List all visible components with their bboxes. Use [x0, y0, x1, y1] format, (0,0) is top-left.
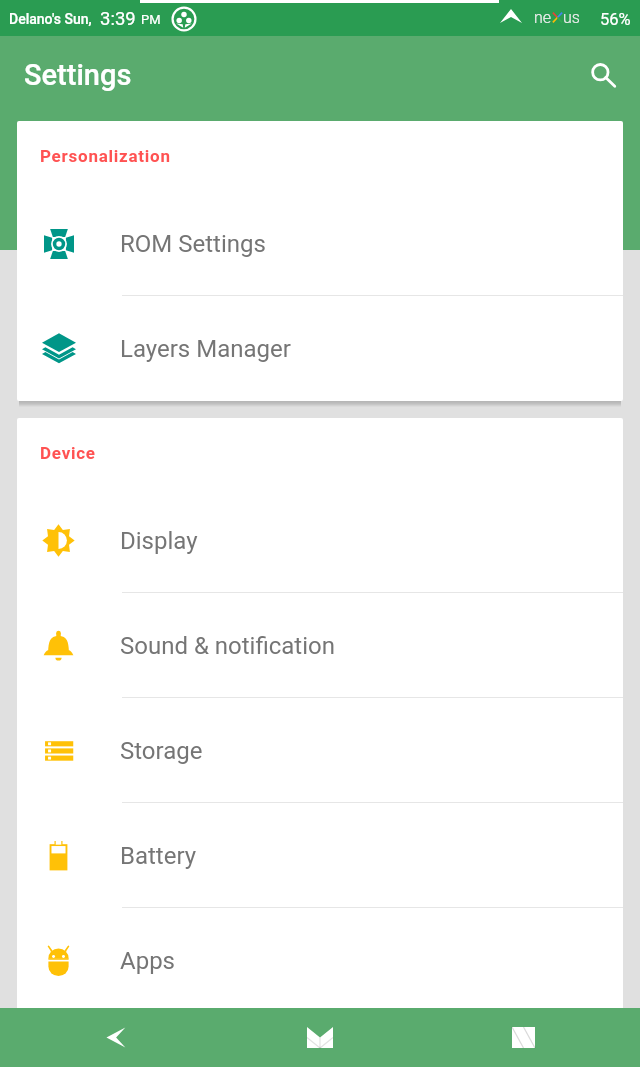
button[interactable]: Display: [17, 488, 623, 593]
staticText: us: [563, 8, 580, 27]
staticText: Sound & notification: [120, 632, 335, 660]
staticText: Apps: [120, 947, 175, 975]
button[interactable]: Back: [77, 1008, 157, 1067]
button[interactable]: ROM Settings: [17, 191, 623, 296]
button[interactable]: Apps: [17, 908, 623, 1013]
staticText: Device: [40, 443, 96, 463]
staticText: Delano's Sun,: [9, 11, 92, 27]
staticText: Layers Manager: [120, 335, 291, 363]
button[interactable]: Search: [575, 47, 631, 103]
staticText: x: [554, 8, 562, 27]
staticText: Battery: [120, 842, 197, 870]
button[interactable]: Sound & notification: [17, 593, 623, 698]
button[interactable]: Battery: [17, 803, 623, 908]
button[interactable]: Storage: [17, 698, 623, 803]
staticText: PM: [141, 12, 161, 27]
staticText: Settings: [24, 58, 132, 92]
staticText: Display: [120, 527, 198, 555]
staticText: 56%: [600, 10, 631, 29]
button[interactable]: Recent apps: [483, 1008, 563, 1067]
button[interactable]: Home: [280, 1008, 360, 1067]
staticText: 3:39: [100, 8, 136, 30]
staticText: ROM Settings: [120, 230, 266, 258]
staticText: ne: [534, 8, 552, 27]
staticText: Storage: [120, 737, 203, 765]
button[interactable]: Layers Manager: [17, 296, 623, 401]
staticText: Personalization: [40, 146, 171, 166]
